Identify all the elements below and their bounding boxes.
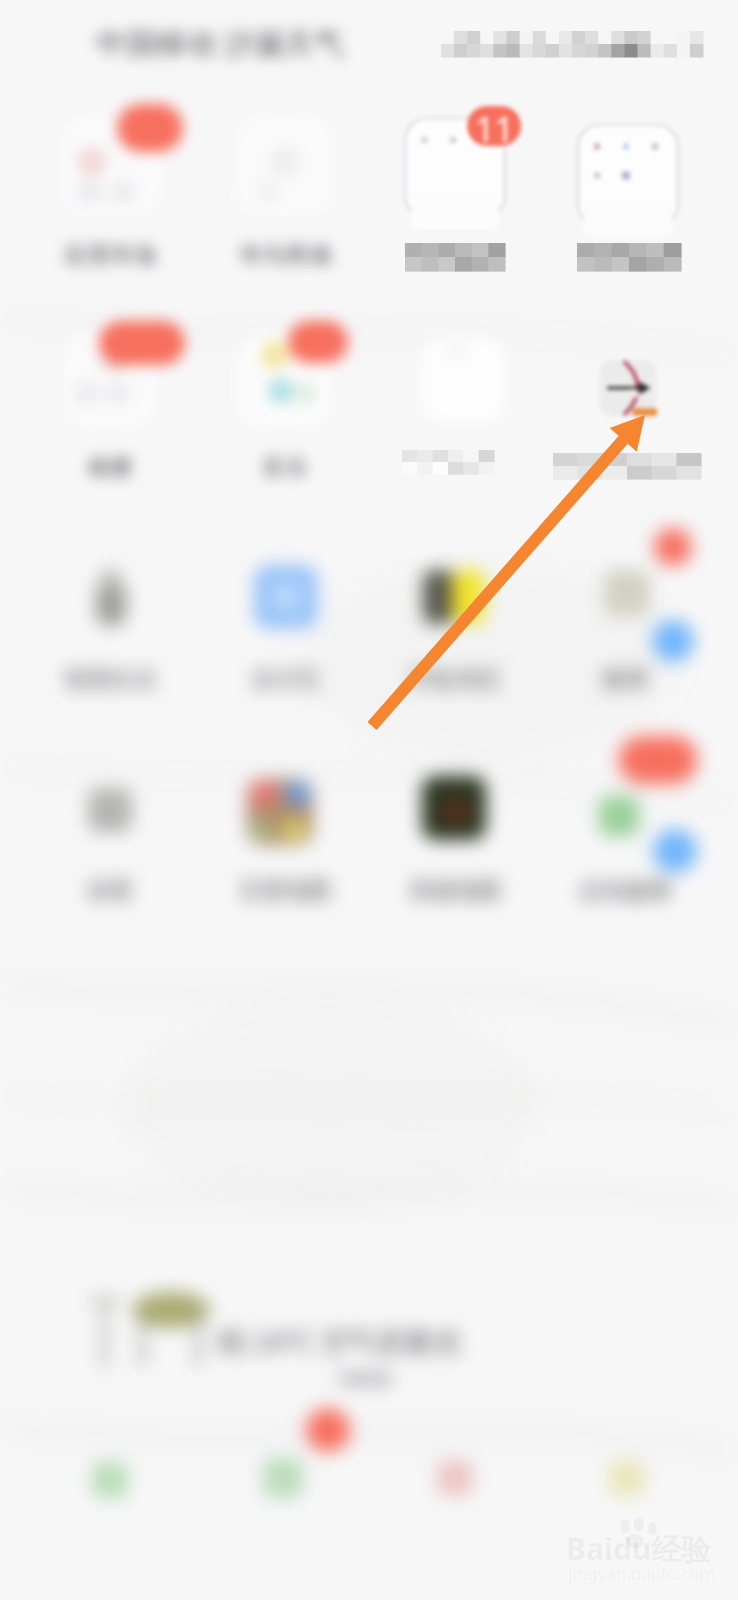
staticText: 中国移动 沙漏天气	[96, 22, 344, 63]
button[interactable]: App icon	[48, 533, 172, 685]
staticText: 高德地图	[409, 876, 501, 905]
button[interactable]: App icon	[223, 533, 347, 685]
button[interactable]: App icon	[565, 104, 689, 256]
staticText: 微博	[602, 665, 648, 694]
button[interactable]: App icon	[393, 104, 517, 256]
staticText: 华为商城	[239, 241, 331, 270]
button[interactable]: App icon	[565, 746, 689, 898]
staticText: 百度地图	[239, 876, 331, 905]
staticText: 11	[475, 106, 514, 146]
staticText: 支付宝	[251, 665, 320, 694]
button[interactable]: App icon	[223, 104, 347, 256]
staticText: 晴 24℃ 空气质量优	[218, 1322, 461, 1360]
button[interactable]: Dock app	[575, 1412, 679, 1516]
button[interactable]: App icon	[393, 317, 517, 469]
staticText: 运动健康	[579, 876, 671, 905]
button[interactable]: App icon	[48, 104, 172, 256]
button[interactable]: App icon	[393, 746, 517, 898]
staticText: 设置	[87, 876, 133, 905]
staticText: 智慧生活	[64, 665, 156, 694]
button[interactable]: App icon	[48, 746, 172, 898]
button[interactable]: App icon	[565, 533, 689, 685]
button[interactable]: Dock app	[403, 1412, 507, 1516]
button[interactable]: App icon	[393, 533, 517, 685]
staticText: 手机淘宝	[409, 665, 501, 694]
staticText: 音乐	[262, 453, 308, 482]
button[interactable]: Weather widget	[70, 1270, 530, 1390]
staticText: 应用市场	[64, 241, 156, 270]
staticText: 相册	[87, 453, 133, 482]
button[interactable]: Dock app	[233, 1412, 337, 1516]
button[interactable]: App icon	[223, 317, 347, 469]
button[interactable]: App icon	[48, 317, 172, 469]
staticText: Baidu经验	[566, 1528, 712, 1569]
button[interactable]: App icon	[223, 746, 347, 898]
button[interactable]: App icon	[565, 317, 689, 469]
button[interactable]: Dock app	[58, 1412, 162, 1516]
